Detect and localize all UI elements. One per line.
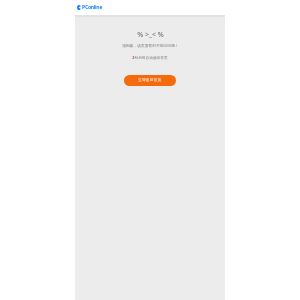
- button[interactable]: 立即返回首页: [124, 75, 176, 86]
- staticText: 2秒后将自动返回首页: [132, 55, 168, 60]
- staticText: 很抱歉，该页面暂时不能访问哦！: [122, 43, 179, 48]
- button[interactable]: PConline logo: [77, 4, 103, 11]
- staticText: 立即返回首页: [138, 78, 162, 83]
- staticText: % >_< %: [137, 30, 164, 40]
- staticText: PConline: [82, 4, 103, 11]
